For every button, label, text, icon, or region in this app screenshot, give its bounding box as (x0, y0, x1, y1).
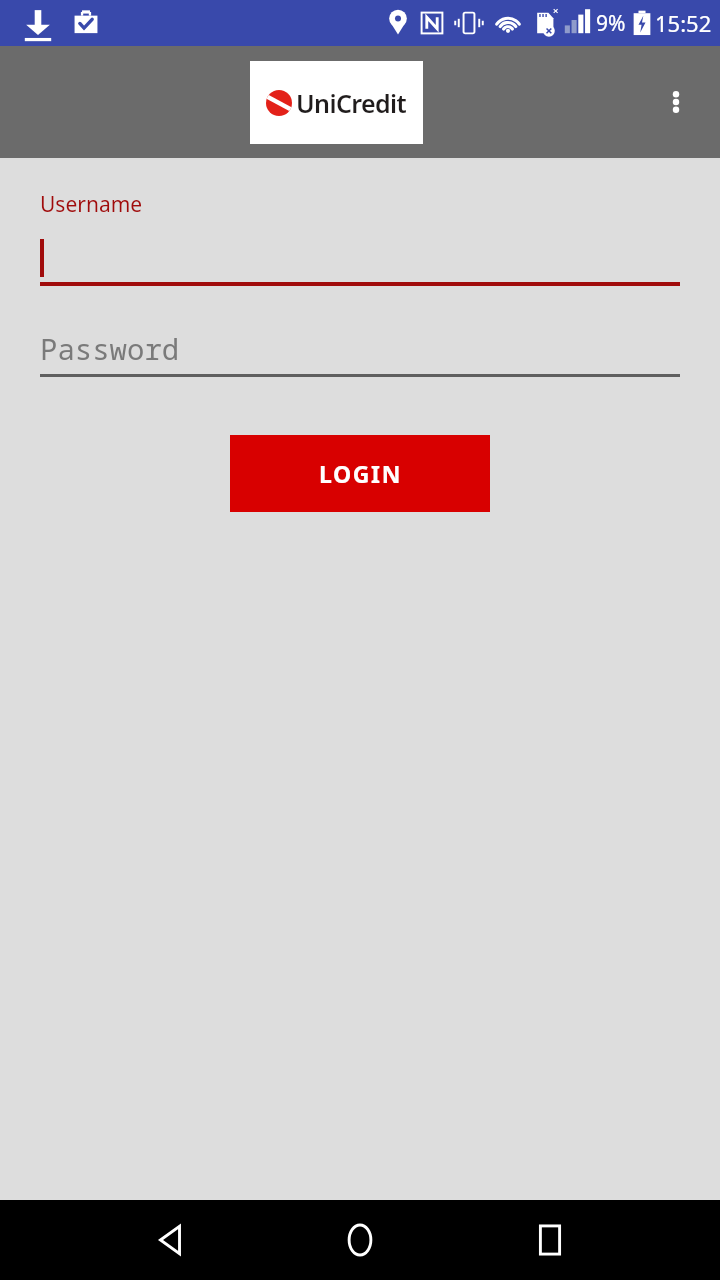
staticText: UniCredit (296, 86, 407, 120)
button[interactable]: Home (324, 1204, 396, 1276)
button[interactable]: Back (134, 1204, 206, 1276)
staticText: Password (40, 329, 180, 368)
button[interactable]: UniCredit (250, 61, 423, 144)
staticText: LOGIN (319, 458, 402, 489)
button[interactable]: LOGIN (230, 435, 490, 512)
staticText: 15:52 (655, 8, 712, 38)
button[interactable]: Password (40, 329, 680, 377)
button[interactable]: Username (40, 190, 680, 286)
button[interactable]: More options (648, 74, 704, 130)
staticText: 9% (596, 9, 626, 38)
button[interactable]: Recent apps (514, 1204, 586, 1276)
staticText: Username (40, 190, 143, 219)
